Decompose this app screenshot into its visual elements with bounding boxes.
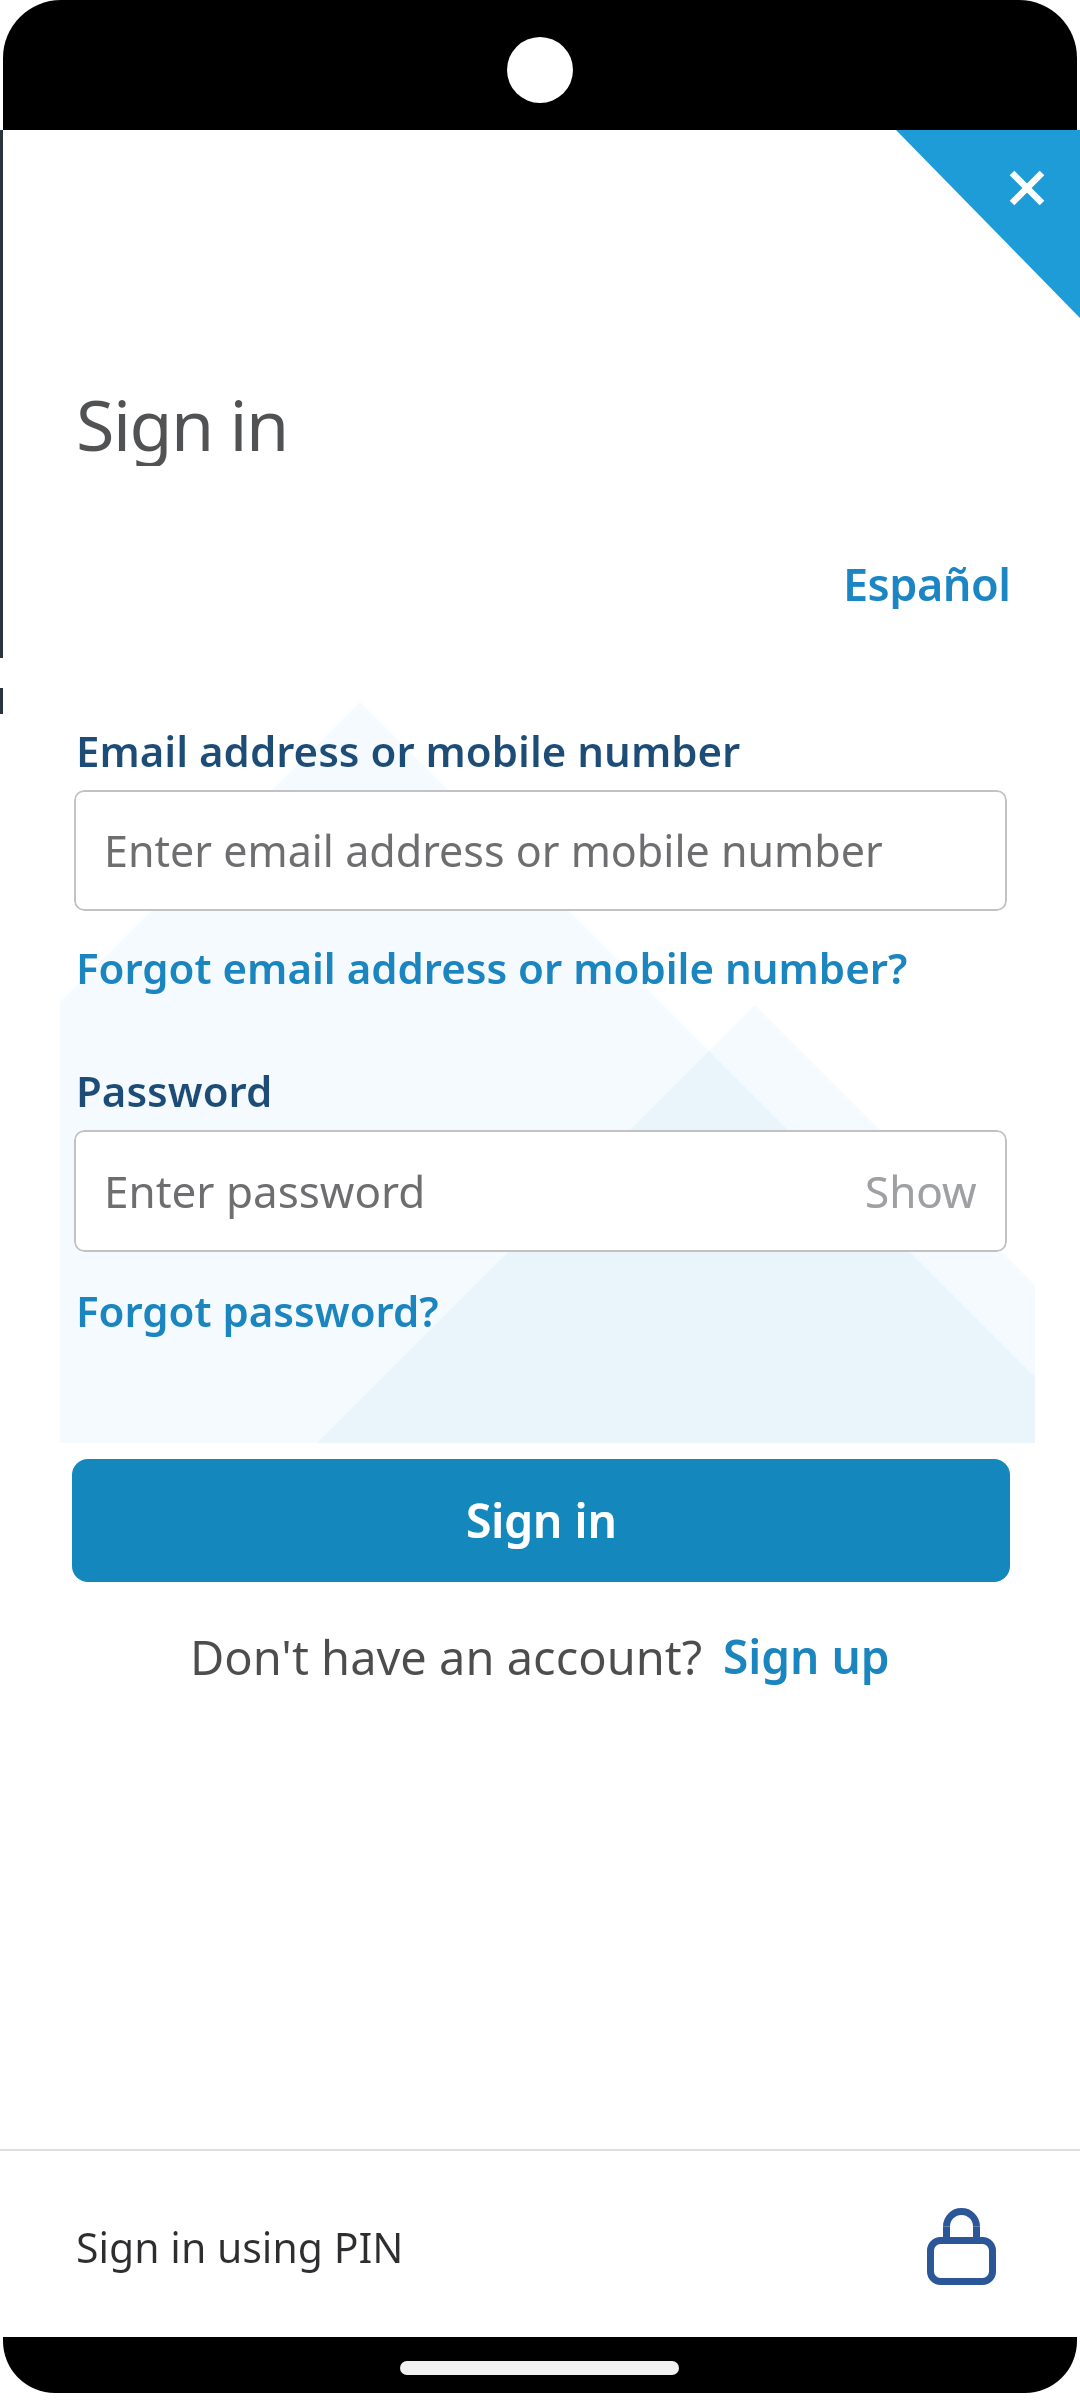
- staticText: Forgot email address or mobile number?: [76, 939, 908, 995]
- staticText: Show: [865, 1161, 977, 1221]
- staticText: Password: [76, 1062, 273, 1118]
- staticText: Forgot password?: [76, 1282, 439, 1338]
- staticText: Enter password: [104, 1161, 426, 1221]
- button[interactable]: Español: [843, 553, 1011, 609]
- staticText: Don't have an account?: [190, 1625, 703, 1687]
- staticText: Sign in using PIN: [76, 2219, 404, 2273]
- staticText: Español: [843, 553, 1011, 609]
- button[interactable]: Sign in using PIN: [0, 2190, 1080, 2305]
- staticText: Email address or mobile number: [76, 722, 741, 778]
- staticText: Sign up: [723, 1625, 890, 1687]
- staticText: Sign in: [466, 1489, 617, 1552]
- button[interactable]: Enter email address or mobile number: [74, 790, 1007, 911]
- button[interactable]: [960, 135, 1080, 255]
- button[interactable]: Sign up: [723, 1625, 890, 1687]
- button[interactable]: Show: [865, 1161, 977, 1221]
- button[interactable]: Forgot password?: [76, 1282, 439, 1338]
- staticText: Enter email address or mobile number: [104, 821, 883, 880]
- button[interactable]: Enter password: [74, 1130, 1007, 1252]
- button[interactable]: Forgot email address or mobile number?: [76, 939, 908, 995]
- button[interactable]: Sign in: [72, 1459, 1010, 1582]
- staticText: Sign in: [76, 376, 288, 466]
